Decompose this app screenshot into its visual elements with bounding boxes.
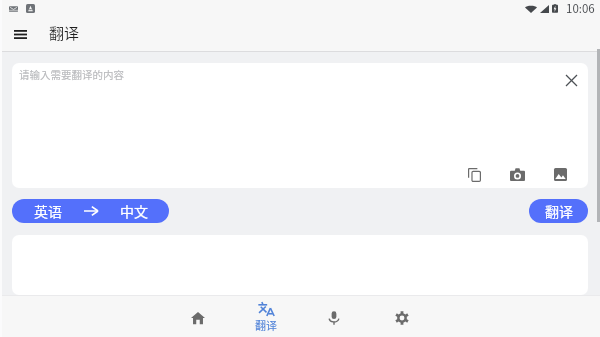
- button[interactable]: Open navigation menu: [6, 20, 34, 48]
- staticText: 英语: [34, 201, 62, 221]
- button[interactable]: Clear text: [559, 68, 583, 92]
- button[interactable]: 英语: [12, 199, 169, 223]
- button[interactable]: Settings: [368, 296, 436, 337]
- staticText: 请输入需要翻译的内容: [19, 67, 124, 82]
- button[interactable]: Paste: [463, 163, 486, 186]
- button[interactable]: Camera: [506, 163, 529, 186]
- staticText: 翻译: [255, 317, 277, 333]
- staticText: 10:06: [566, 0, 595, 17]
- staticText: 翻译: [49, 22, 80, 44]
- button[interactable]: Gallery: [549, 163, 572, 186]
- staticText: 翻译: [545, 201, 573, 221]
- button[interactable]: Voice input: [300, 296, 368, 337]
- button[interactable]: 翻译: [232, 296, 300, 337]
- button[interactable]: 翻译: [529, 199, 588, 223]
- staticText: 中文: [120, 201, 148, 221]
- button[interactable]: Home: [164, 296, 232, 337]
